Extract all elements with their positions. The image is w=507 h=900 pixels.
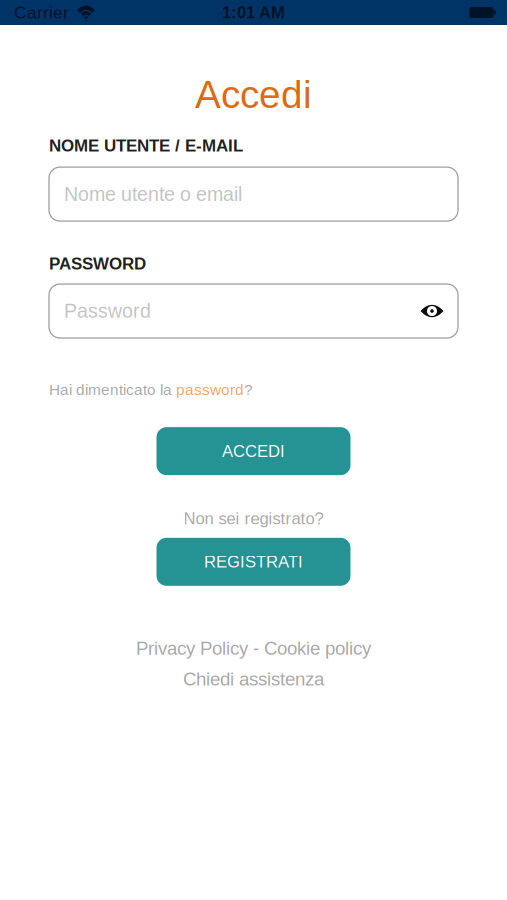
staticText: 1:01 AM [222,3,285,22]
staticText: Accedi [195,73,312,116]
staticText: NOME UTENTE / E-MAIL [49,136,243,155]
button[interactable]: ACCEDI [156,427,350,475]
staticText: ? [244,381,253,398]
staticText: PASSWORD [49,254,146,273]
button[interactable]: Hai dimenticato la [49,381,253,398]
button[interactable]: Chiedi assistenza [183,669,324,689]
staticText: Carrier [14,3,69,22]
staticText: Password [64,300,151,322]
button[interactable]: Privacy Policy - Cookie policy [136,638,371,659]
staticText: password [176,381,244,398]
staticText: Non sei registrato? [183,509,323,528]
staticText: Chiedi assistenza [183,669,324,689]
staticText: Privacy Policy - Cookie policy [136,638,371,659]
button[interactable]: REGISTRATI [156,538,350,586]
staticText: REGISTRATI [204,552,303,571]
button[interactable]: Show password [417,291,447,331]
staticText: ACCEDI [222,442,285,460]
staticText: Hai dimenticato la [49,381,176,398]
staticText: Nome utente o email [64,183,242,205]
